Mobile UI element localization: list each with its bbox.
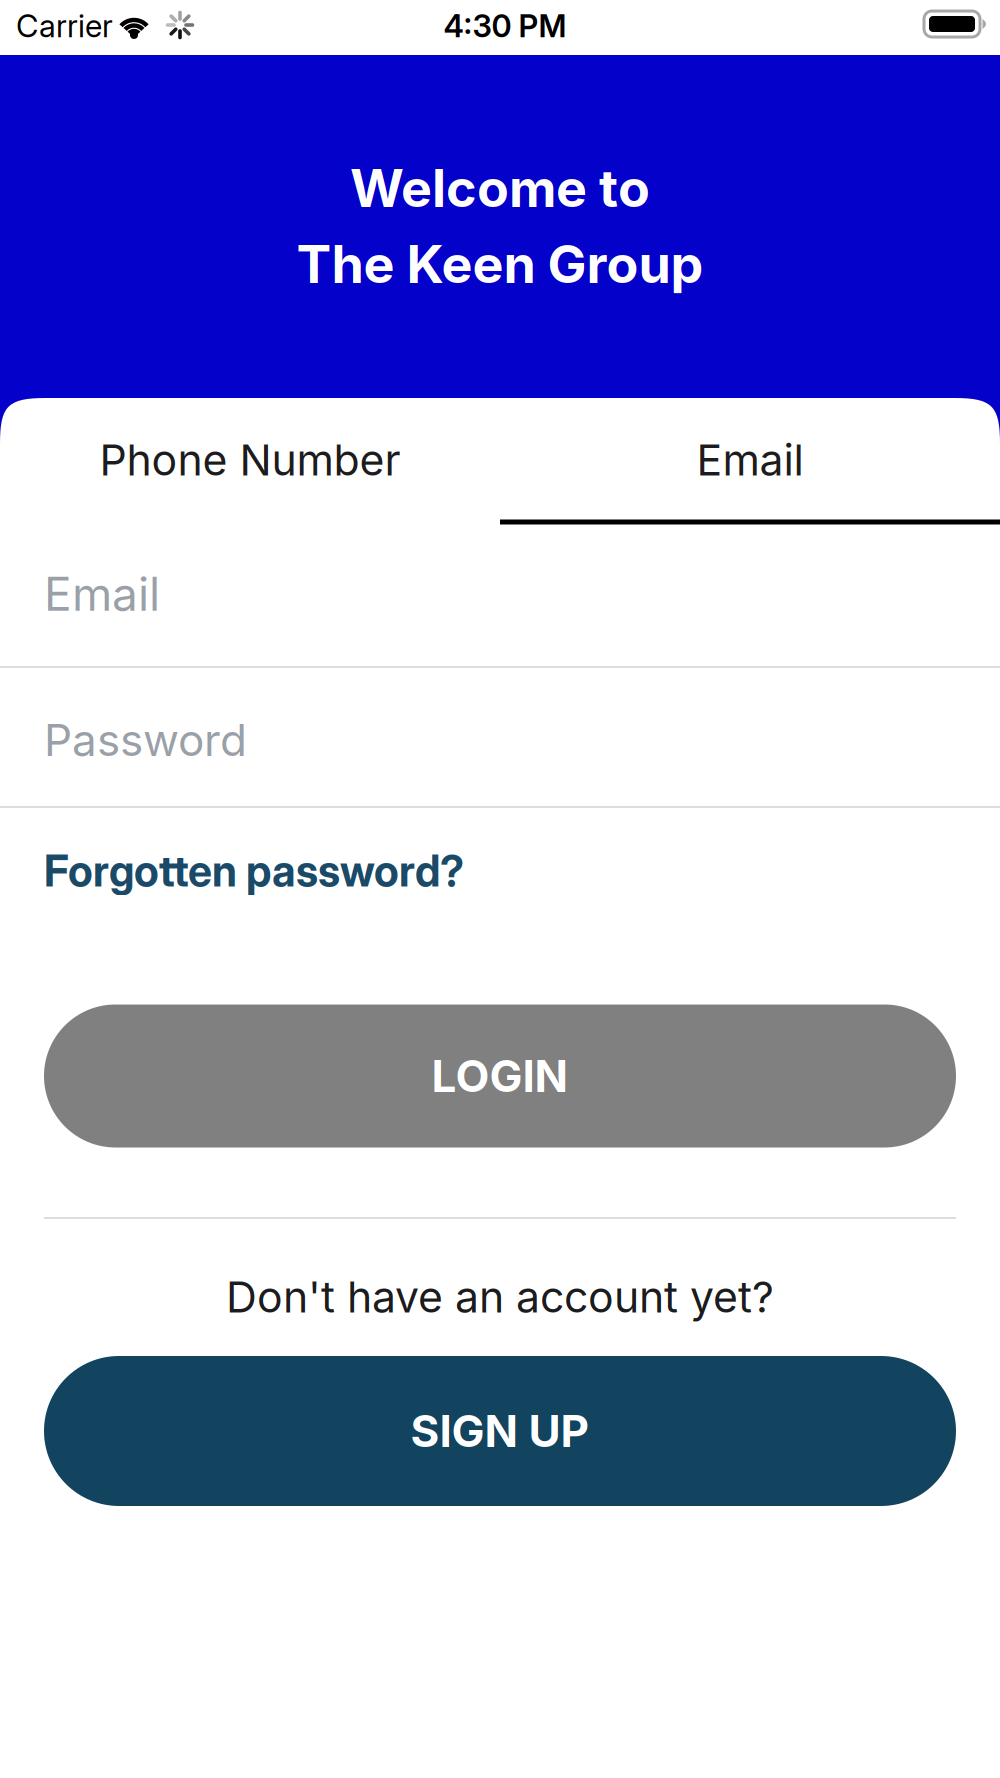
- button[interactable]: SIGN UP: [44, 1356, 956, 1506]
- staticText: SIGN UP: [410, 1404, 589, 1458]
- staticText: The Keen Group: [296, 232, 703, 295]
- staticText: LOGIN: [431, 1049, 568, 1103]
- staticText: Forgotten password?: [44, 845, 464, 897]
- staticText: Carrier: [16, 7, 113, 45]
- button[interactable]: Phone Number: [0, 397, 500, 522]
- button[interactable]: Forgotten password?: [44, 845, 464, 897]
- button[interactable]: LOGIN: [44, 1004, 956, 1147]
- staticText: Phone Number: [99, 434, 400, 486]
- staticText: Password: [44, 713, 247, 767]
- button[interactable]: Password: [0, 671, 1000, 809]
- button[interactable]: Email: [0, 524, 1000, 664]
- staticText: Email: [696, 434, 803, 486]
- button[interactable]: Email: [500, 397, 1000, 522]
- staticText: 4:30 PM: [443, 7, 566, 45]
- staticText: Don't have an account yet?: [226, 1271, 774, 1323]
- staticText: Email: [44, 566, 160, 622]
- staticText: Welcome to: [350, 156, 650, 219]
